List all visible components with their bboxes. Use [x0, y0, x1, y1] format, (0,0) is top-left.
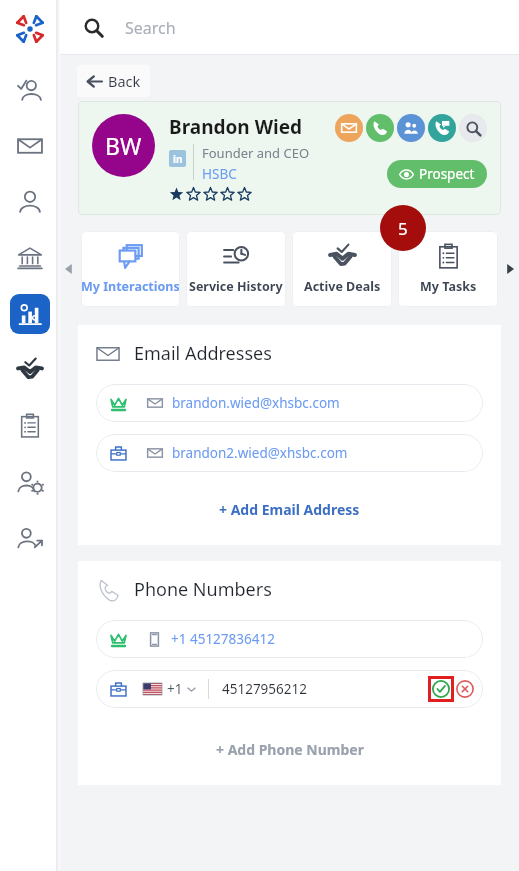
staticText: + Add Email Address — [219, 500, 360, 519]
staticText: BW — [105, 130, 142, 161]
staticText: Service History — [189, 278, 283, 295]
button[interactable]: LinkedIn — [169, 150, 186, 167]
button[interactable]: + Add Phone Number — [212, 736, 368, 763]
staticText: Search — [125, 17, 176, 39]
button[interactable]: Call — [366, 114, 394, 142]
staticText: brandon.wied@xhsbc.com — [172, 394, 340, 412]
button[interactable]: Deals — [2, 342, 58, 398]
button[interactable]: Previous tabs — [60, 231, 78, 307]
button[interactable]: Active Deals — [292, 231, 392, 307]
button[interactable]: +1 — [96, 670, 483, 708]
button[interactable]: 5 — [380, 205, 426, 251]
button[interactable]: Mail — [2, 118, 58, 174]
button[interactable]: Back — [77, 65, 150, 97]
button[interactable]: BW — [78, 101, 501, 215]
button[interactable]: Tasks — [2, 398, 58, 454]
button[interactable]: Rate 1 — [169, 187, 184, 202]
button[interactable]: Find — [459, 114, 487, 142]
button[interactable]: Rate 3 — [203, 187, 218, 202]
button[interactable]: Home — [7, 6, 53, 52]
button[interactable]: Service History — [186, 231, 286, 307]
staticText: Founder and CEO — [202, 144, 310, 162]
staticText: Prospect — [419, 165, 475, 183]
staticText: Brandon Wied — [169, 114, 303, 140]
staticText: My Interactions — [81, 278, 180, 295]
staticText: 5 — [398, 217, 408, 240]
staticText: in — [173, 152, 183, 166]
staticText: Back — [108, 71, 141, 91]
button[interactable]: Rate 4 — [220, 187, 235, 202]
button[interactable]: Prospect — [387, 160, 487, 188]
button[interactable]: Contacts — [2, 174, 58, 230]
staticText: HSBC — [202, 165, 237, 183]
button[interactable]: +1 45127836412 — [96, 620, 483, 658]
staticText: +1 45127836412 — [171, 630, 275, 648]
button[interactable]: Referrals — [2, 510, 58, 566]
button[interactable]: Analytics — [2, 286, 58, 342]
button[interactable]: Next tabs — [501, 231, 519, 307]
staticText: 45127956212 — [222, 680, 307, 698]
staticText: My Tasks — [420, 278, 477, 295]
button[interactable]: My Tasks — [398, 231, 498, 307]
button[interactable]: Search — [82, 16, 105, 39]
button[interactable]: Email — [335, 114, 363, 142]
button[interactable]: Accounts — [2, 230, 58, 286]
button[interactable]: Cancel — [455, 679, 475, 699]
button[interactable]: brandon2.wied@xhsbc.com — [96, 434, 483, 472]
button[interactable]: Message — [428, 114, 456, 142]
button[interactable]: Rate 2 — [186, 187, 201, 202]
button[interactable]: Rate 5 — [237, 187, 252, 202]
button[interactable]: Confirm — [428, 676, 454, 702]
staticText: brandon2.wied@xhsbc.com — [172, 444, 348, 462]
staticText: Phone Numbers — [134, 577, 272, 602]
button[interactable]: brandon.wied@xhsbc.com — [96, 384, 483, 422]
button[interactable]: My Interactions — [81, 231, 180, 307]
button[interactable]: Leads — [2, 62, 58, 118]
staticText: Active Deals — [304, 278, 381, 295]
staticText: + Add Phone Number — [216, 740, 364, 759]
button[interactable]: Settings — [2, 454, 58, 510]
staticText: +1 — [167, 680, 183, 698]
button[interactable]: + Add Email Address — [215, 496, 364, 523]
staticText: Email Addresses — [134, 341, 272, 366]
button[interactable]: Contacts — [397, 114, 425, 142]
